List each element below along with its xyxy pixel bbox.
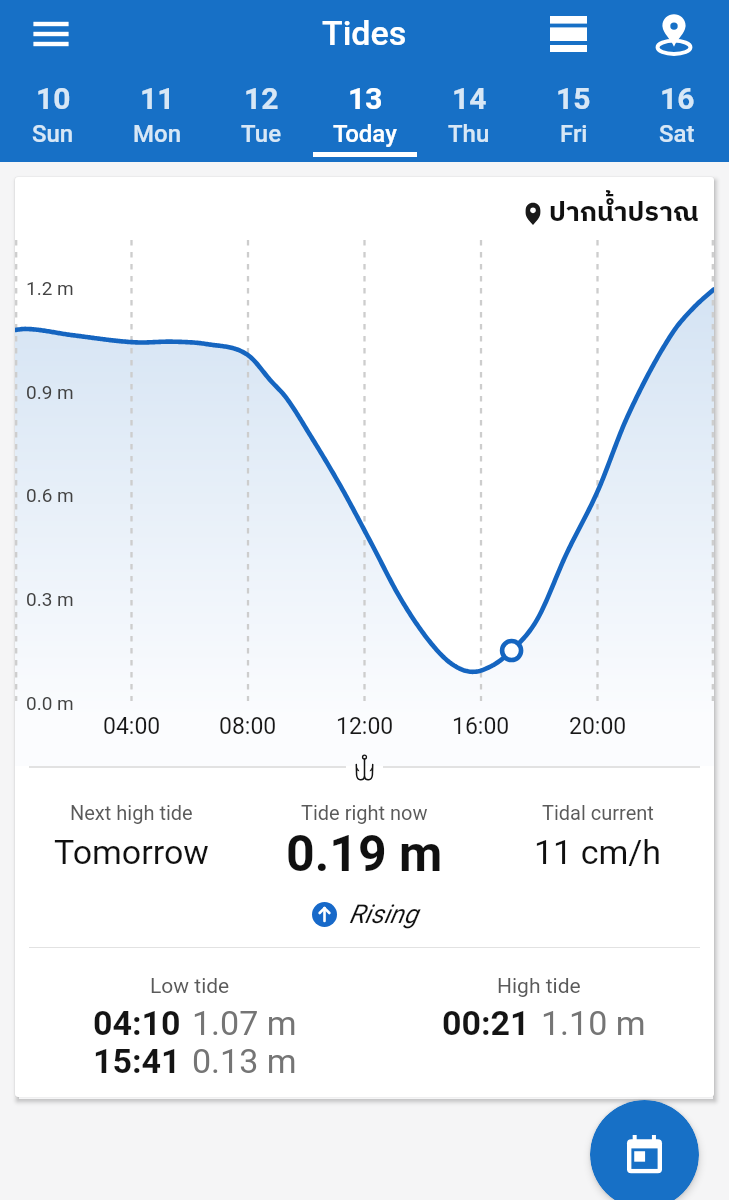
staticText: 12 [244,81,279,115]
staticText: 0.0 m [26,692,74,714]
button[interactable]: Location [647,7,701,61]
staticText: 10 [36,81,71,115]
staticText: Next high tide [70,801,193,824]
staticText: 1.07 m [192,1003,297,1041]
staticText: Tidal current [542,801,654,824]
button[interactable]: Table view [541,7,595,61]
staticText: 20:00 [569,713,627,740]
staticText: 11 cm/h [534,832,662,872]
staticText: Rising [349,899,418,929]
staticText: 1.2 m [26,277,74,299]
staticText: 15 [556,81,591,115]
button[interactable]: 10 [0,68,105,162]
staticText: ปากน้ำปราณ [549,191,699,236]
staticText: Sat [659,120,695,148]
button[interactable]: 13 [313,68,417,162]
staticText: 11 [140,81,175,115]
staticText: 16 [660,81,695,115]
button[interactable]: Pick date [590,1100,699,1200]
staticText: 1.10 m [541,1003,646,1041]
staticText: Tides [322,13,407,53]
staticText: 0.13 m [192,1041,297,1079]
staticText: Tide right now [301,801,428,824]
staticText: 04:00 [103,713,161,740]
staticText: 13 [348,81,383,115]
staticText: Low tide [150,974,230,999]
staticText: 0.19 m [286,825,443,879]
staticText: Thu [448,120,490,148]
button[interactable]: 12 [209,68,313,162]
button[interactable]: 16 [625,68,729,162]
staticText: High tide [497,974,581,999]
staticText: 04:10 [93,1003,181,1041]
staticText: 0.9 m [26,381,74,403]
button[interactable]: 15 [521,68,625,162]
staticText: Tomorrow [54,832,209,872]
staticText: 16:00 [452,713,510,740]
staticText: Fri [560,120,588,148]
staticText: 08:00 [219,713,277,740]
staticText: 0.6 m [26,484,74,506]
button[interactable]: 14 [417,68,521,162]
staticText: Tue [241,120,282,148]
staticText: Today [333,120,397,148]
button[interactable]: Menu [22,5,80,63]
staticText: 12:00 [336,713,394,740]
staticText: 14 [452,81,487,115]
staticText: 0.3 m [26,588,74,610]
staticText: Sun [32,120,74,148]
staticText: 15:41 [93,1041,181,1079]
staticText: 00:21 [442,1003,530,1041]
button[interactable]: 11 [105,68,209,162]
staticText: Mon [133,120,182,148]
